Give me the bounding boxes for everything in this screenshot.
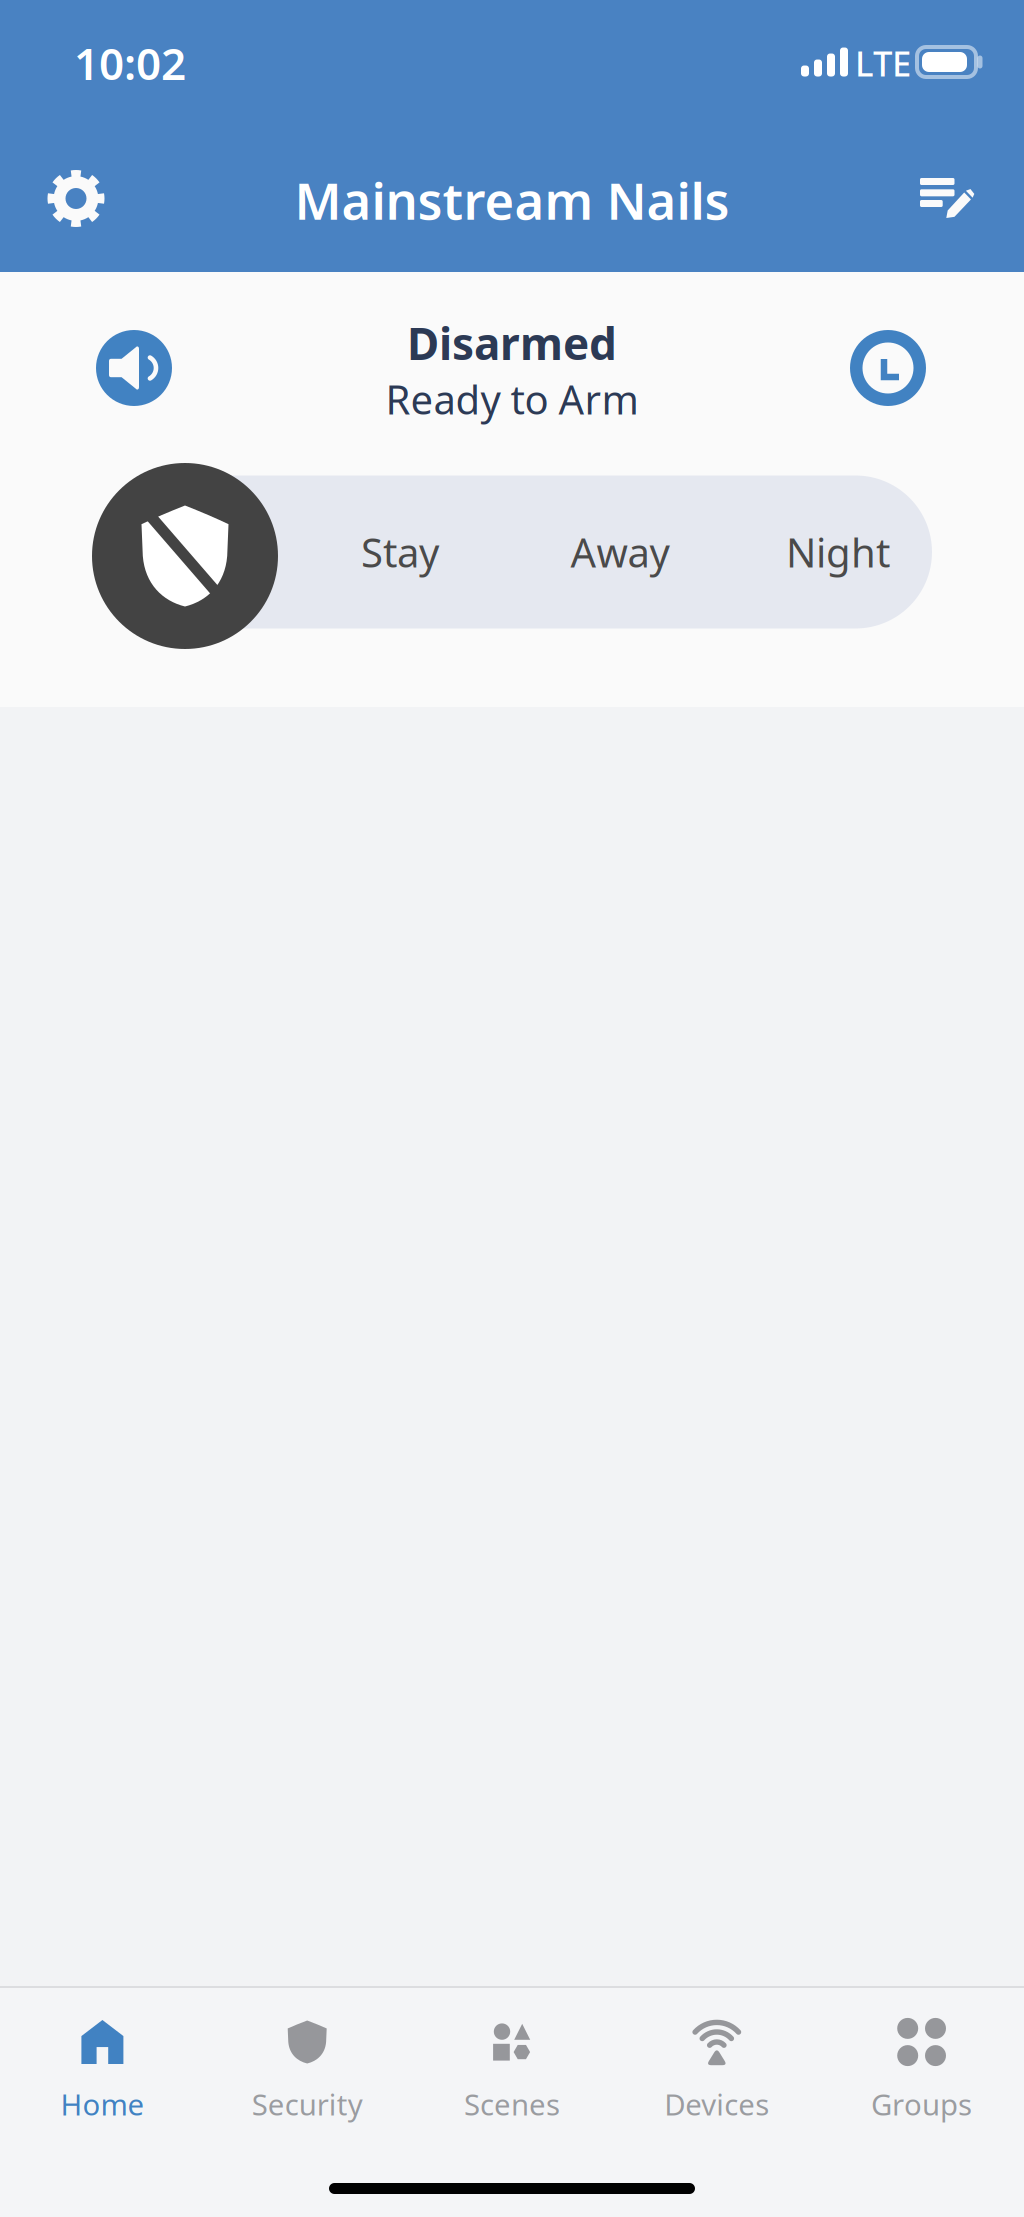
- staticText: Night: [786, 525, 890, 578]
- staticText: Stay: [361, 525, 439, 578]
- staticText: Home: [60, 2084, 144, 2123]
- staticText: 10:02: [74, 34, 186, 92]
- staticText: Scenes: [464, 2084, 560, 2123]
- button[interactable]: Security: [205, 2017, 410, 2123]
- staticText: Away: [570, 525, 669, 578]
- staticText: LTE: [855, 40, 911, 86]
- button[interactable]: Stay: [291, 475, 509, 628]
- button[interactable]: Disarm: [92, 463, 278, 649]
- staticText: Groups: [871, 2084, 972, 2123]
- button[interactable]: Sound settings: [86, 320, 182, 416]
- staticText: Security: [252, 2084, 363, 2123]
- staticText: Ready to Arm: [385, 372, 638, 425]
- staticText: Disarmed: [407, 314, 617, 372]
- staticText: Mainstream Nails: [294, 166, 729, 234]
- button[interactable]: Home: [0, 2017, 205, 2123]
- button[interactable]: Settings: [23, 145, 129, 251]
- button[interactable]: Devices: [614, 2017, 819, 2123]
- button[interactable]: Away: [511, 475, 729, 628]
- button[interactable]: Edit: [895, 146, 1001, 252]
- button[interactable]: Schedules: [840, 320, 936, 416]
- button[interactable]: Groups: [819, 2017, 1024, 2123]
- staticText: Devices: [664, 2084, 769, 2123]
- button[interactable]: Scenes: [410, 2017, 614, 2123]
- button[interactable]: Night: [729, 475, 947, 628]
